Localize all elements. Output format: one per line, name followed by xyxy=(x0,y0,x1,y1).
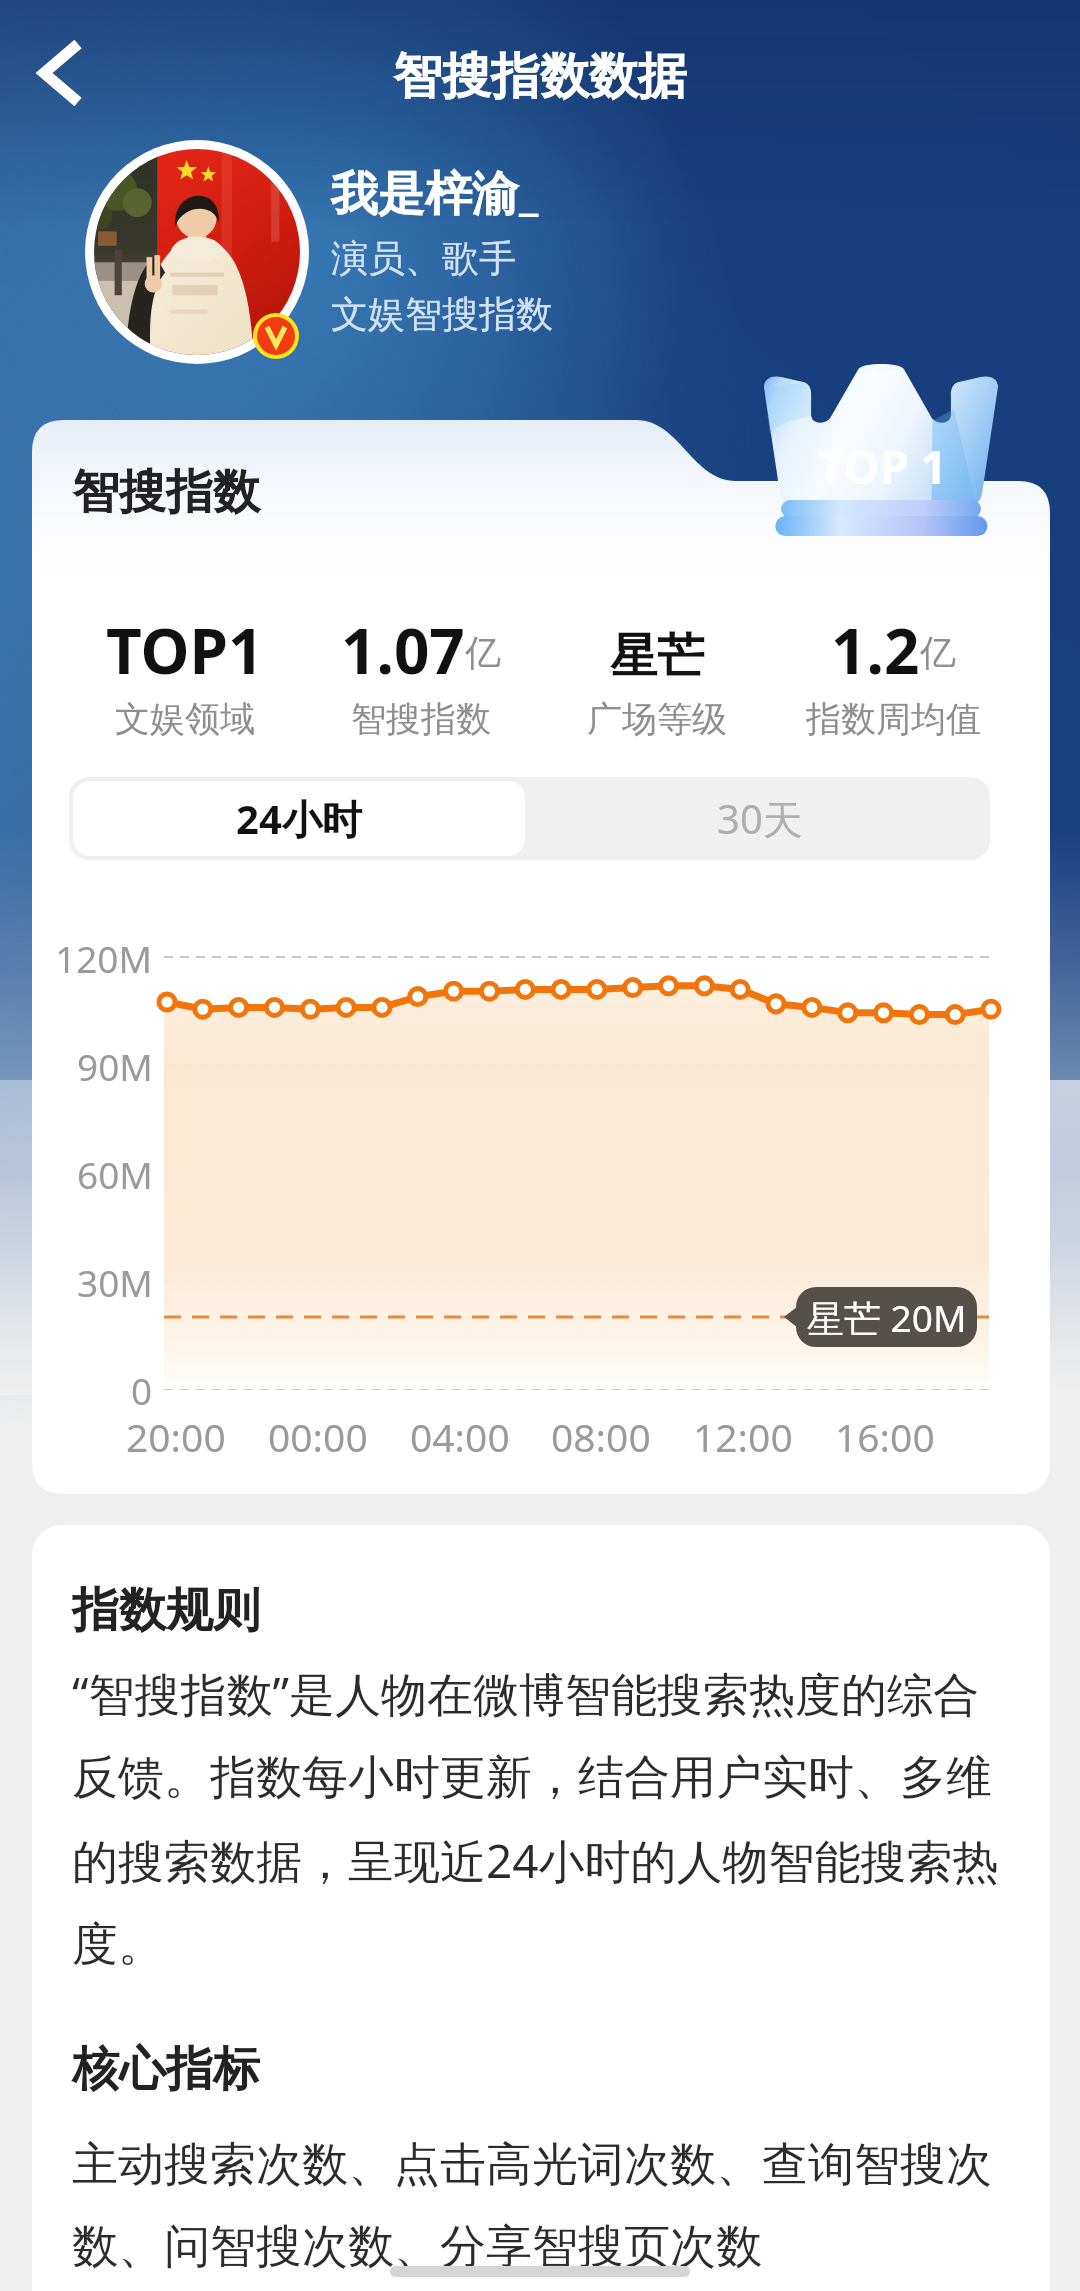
staticText: 90M xyxy=(77,1041,153,1091)
staticText: 30天 xyxy=(717,791,803,846)
staticText: 1.2 xyxy=(831,608,920,678)
staticText: 0 xyxy=(131,1365,153,1415)
button[interactable]: 30天 xyxy=(529,777,990,860)
staticText: 20:00 xyxy=(126,1410,226,1463)
staticText: 广场等级 xyxy=(587,697,727,741)
staticText: 指数周均值 xyxy=(806,697,981,741)
staticText: TOP 1 xyxy=(818,435,947,498)
button[interactable]: Back xyxy=(12,22,112,122)
staticText: 30M xyxy=(77,1257,153,1307)
staticText: 星芒 20M xyxy=(807,1292,967,1343)
staticText: 亿 xyxy=(465,630,501,675)
staticText: 60M xyxy=(77,1149,153,1199)
staticText: 24小时 xyxy=(236,791,362,846)
staticText: 文娱领域 xyxy=(115,697,255,741)
staticText: 星芒 xyxy=(610,627,704,686)
staticText: 04:00 xyxy=(410,1410,510,1463)
staticText: 智搜指数 xyxy=(351,697,491,741)
staticText: 指数规则 xyxy=(72,1581,260,1640)
staticText: 智搜指数数据 xyxy=(393,46,687,108)
staticText: 主动搜索次数、点击高光词次数、查询智搜次 数、问智搜次数、分享智搜页次数 xyxy=(72,2136,992,2276)
staticText: 16:00 xyxy=(835,1410,935,1463)
staticText: 我是梓渝_ xyxy=(331,160,539,224)
staticText: 演员、歌手 xyxy=(331,235,516,282)
staticText: 核心指标 xyxy=(72,2040,260,2099)
staticText: 文娱智搜指数 xyxy=(331,291,553,338)
staticText: 亿 xyxy=(920,630,956,675)
staticText: 00:00 xyxy=(268,1410,368,1463)
staticText: 12:00 xyxy=(693,1410,793,1463)
staticText: 08:00 xyxy=(551,1410,651,1463)
button[interactable]: 24小时 xyxy=(73,781,525,856)
staticText: 120M xyxy=(55,933,153,983)
staticText: “智搜指数”是人物在微博智能搜索热度的综合 反馈。指数每小时更新，结合用户实时、… xyxy=(72,1662,999,1974)
staticText: 智搜指数 xyxy=(72,463,260,522)
staticText: 1.07 xyxy=(341,608,465,678)
staticText: TOP1 xyxy=(106,608,264,678)
